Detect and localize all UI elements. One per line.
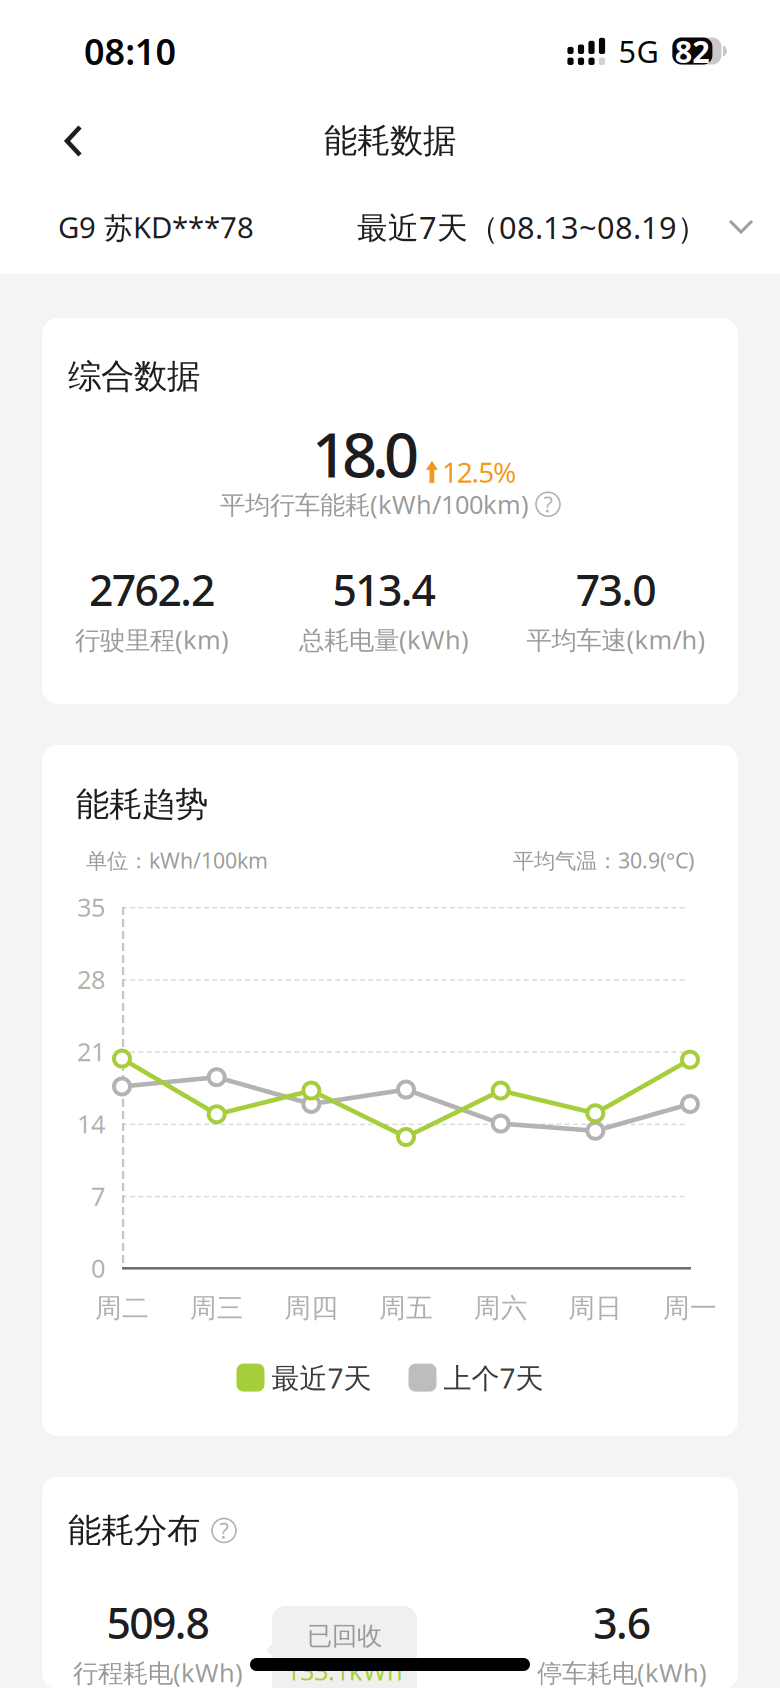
- staticText: 能耗数据: [324, 120, 456, 161]
- staticText: 能耗分布: [68, 1510, 200, 1551]
- staticText: 总耗电量(kWh): [299, 623, 469, 656]
- staticText: 行驶里程(km): [75, 623, 229, 656]
- staticText: 2762.2: [89, 561, 215, 618]
- staticText: 周一: [663, 1292, 717, 1324]
- staticText: 3.6: [593, 1594, 651, 1651]
- button[interactable]: Back: [36, 102, 111, 180]
- staticText: 133.1kWh: [286, 1654, 403, 1687]
- staticText: 上个7天: [443, 1359, 543, 1396]
- staticText: 73.0: [576, 561, 656, 618]
- staticText: 停车耗电(kWh): [537, 1656, 707, 1688]
- staticText: 周日: [568, 1292, 622, 1324]
- staticText: 平均气温：30.9(°C): [513, 846, 694, 874]
- staticText: 行程耗电(kWh): [73, 1656, 243, 1688]
- staticText: 14: [77, 1107, 105, 1140]
- staticText: 5G: [618, 31, 658, 71]
- staticText: 能耗趋势: [76, 784, 208, 825]
- staticText: 周三: [190, 1292, 244, 1324]
- staticText: ?: [543, 490, 552, 518]
- staticText: 周二: [95, 1292, 149, 1324]
- staticText: G9 苏KD***78: [58, 207, 254, 246]
- staticText: 周四: [284, 1292, 338, 1324]
- staticText: ?: [219, 1516, 228, 1545]
- staticText: 已回收: [307, 1621, 382, 1652]
- staticText: 82: [675, 31, 710, 71]
- staticText: 35: [77, 890, 105, 924]
- staticText: 0: [91, 1251, 105, 1285]
- staticText: 平均车速(km/h): [526, 623, 705, 656]
- staticText: 12.5%: [442, 453, 516, 490]
- staticText: 最近7天: [271, 1359, 371, 1396]
- staticText: 综合数据: [68, 356, 200, 397]
- staticText: 18.0: [312, 413, 419, 494]
- staticText: 509.8: [106, 1594, 210, 1651]
- staticText: 周五: [379, 1292, 433, 1324]
- staticText: 7: [91, 1179, 105, 1213]
- staticText: 28: [77, 962, 105, 996]
- staticText: 单位：kWh/100km: [86, 846, 268, 874]
- staticText: 08:10: [84, 27, 176, 75]
- staticText: 最近7天（08.13~08.19）: [357, 207, 708, 247]
- button[interactable]: 最近7天（08.13~08.19）: [357, 207, 754, 247]
- staticText: 21: [77, 1035, 105, 1068]
- staticText: 周六: [474, 1292, 528, 1324]
- staticText: 平均行车能耗(kWh/100km): [220, 487, 529, 521]
- staticText: 513.4: [332, 561, 436, 618]
